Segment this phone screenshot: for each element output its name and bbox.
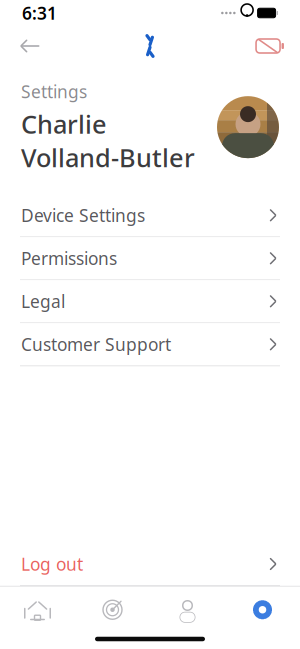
staticText: Log out [21, 552, 83, 575]
button[interactable]: Device Settings [0, 194, 300, 237]
button[interactable]: Customer Support [0, 323, 300, 366]
staticText: 6:31 [22, 1, 57, 24]
staticText: Customer Support [21, 333, 171, 356]
button[interactable]: Legal [0, 280, 300, 323]
staticText: Permissions [21, 247, 117, 270]
staticText: Charlie Volland-Butler [21, 107, 195, 174]
staticText: Device Settings [21, 204, 145, 227]
staticText: Legal [21, 290, 65, 313]
staticText: Settings [21, 80, 87, 103]
button[interactable]: Permissions [0, 237, 300, 280]
button[interactable]: Battery status [248, 26, 292, 66]
button[interactable]: Goals [75, 591, 150, 629]
button[interactable]: Back [8, 26, 52, 66]
button[interactable]: Home [0, 591, 75, 629]
button[interactable]: Settings [225, 591, 300, 629]
button[interactable]: Log out [0, 543, 300, 586]
button[interactable]: Profile [150, 591, 225, 629]
